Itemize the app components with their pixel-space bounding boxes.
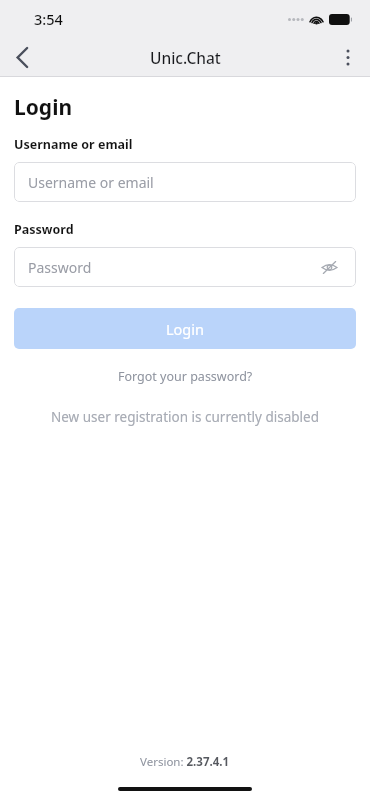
button[interactable]: More options <box>326 38 370 76</box>
button[interactable]: Show password <box>316 254 342 280</box>
staticText: New user registration is currently disab… <box>51 408 319 426</box>
staticText: Username or email <box>28 173 154 192</box>
staticText: Forgot your password? <box>118 368 253 385</box>
button[interactable]: Password <box>14 247 356 287</box>
staticText: Version: 2.37.4.1 <box>140 754 230 770</box>
staticText: Password <box>28 258 92 277</box>
staticText: Password <box>14 221 74 238</box>
staticText: Username or email <box>14 136 133 153</box>
button[interactable]: Forgot your password? <box>112 366 259 387</box>
staticText: Login <box>14 93 73 122</box>
staticText: 3:54 <box>34 9 63 29</box>
staticText: Unic.Chat <box>150 47 221 68</box>
button[interactable]: Back <box>0 38 44 76</box>
button[interactable]: Login <box>14 308 356 349</box>
button[interactable]: Username or email <box>14 162 356 202</box>
staticText: Login <box>166 319 204 339</box>
